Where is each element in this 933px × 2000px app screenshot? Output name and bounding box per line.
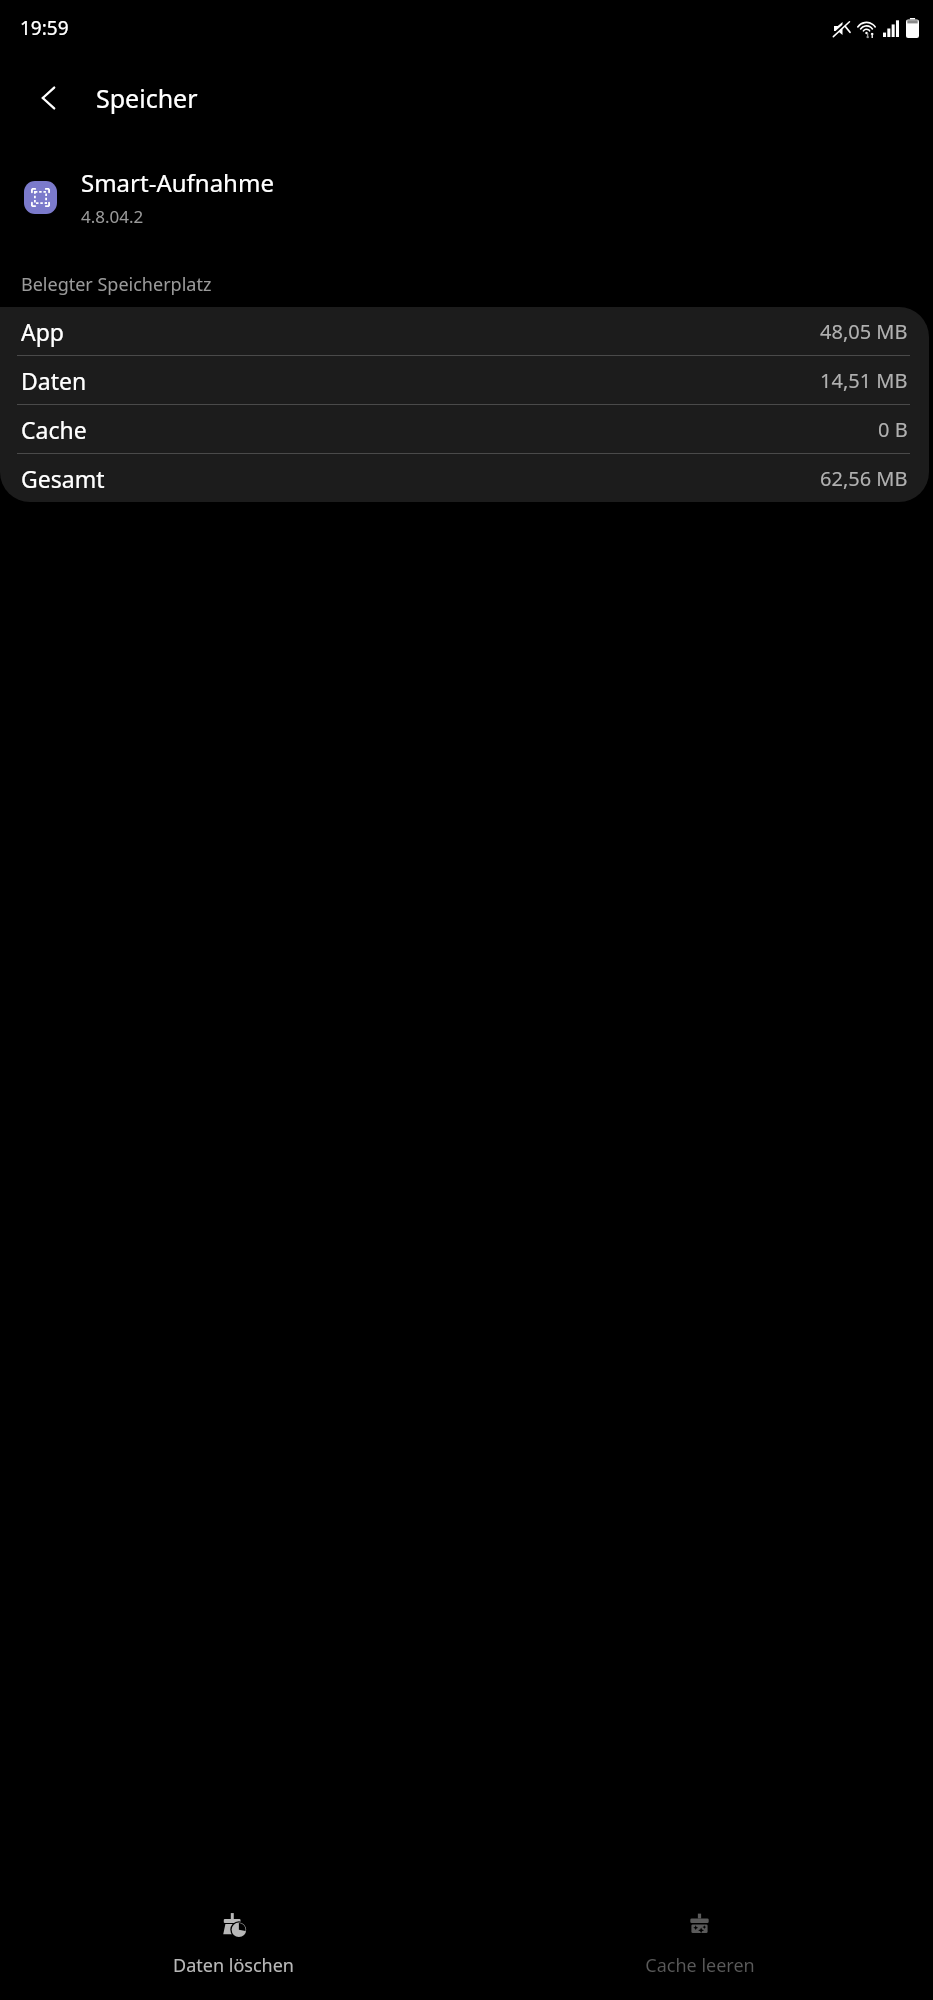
staticText: 48,05 MB	[820, 318, 908, 345]
staticText: Smart-Aufnahme	[81, 166, 274, 199]
button[interactable]: Cache	[0, 405, 929, 453]
staticText: App	[21, 316, 64, 347]
button[interactable]: Daten	[0, 356, 929, 404]
staticText: Speicher	[96, 81, 198, 115]
staticText: Daten löschen	[173, 1953, 294, 1978]
button[interactable]: Gesamt	[0, 454, 929, 502]
button[interactable]: App	[0, 307, 929, 355]
staticText: 62,56 MB	[820, 465, 908, 492]
staticText: 4.8.04.2	[81, 205, 144, 228]
button[interactable]: Daten löschen	[0, 1890, 466, 2000]
staticText: 0 B	[878, 416, 908, 443]
staticText: Belegter Speicherplatz	[21, 272, 212, 297]
button[interactable]: Cache leeren	[466, 1890, 933, 2000]
staticText: Cache	[21, 414, 87, 445]
staticText: Daten	[21, 365, 87, 396]
staticText: Gesamt	[21, 463, 105, 494]
button[interactable]: Back	[18, 67, 80, 129]
staticText: Cache leeren	[645, 1953, 755, 1978]
staticText: 14,51 MB	[820, 367, 908, 394]
staticText: 19:59	[20, 15, 69, 41]
